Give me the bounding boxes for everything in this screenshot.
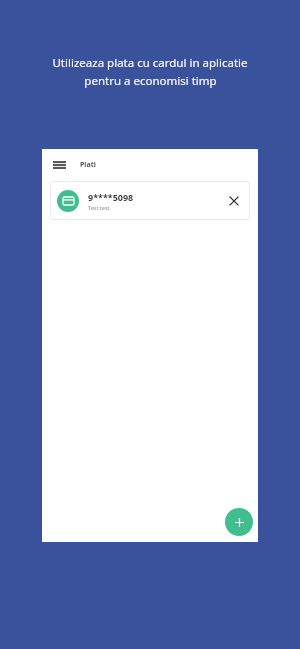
button[interactable]: Open navigation menu <box>51 157 67 173</box>
staticText: Test test <box>88 204 110 211</box>
staticText: Utilizeaza plata cu cardul in aplicatie <box>52 55 248 71</box>
button[interactable]: Add payment method <box>225 508 253 536</box>
button[interactable]: Remove card <box>225 192 243 210</box>
staticText: Plati <box>80 160 96 170</box>
staticText: pentru a economisi timp <box>84 73 217 89</box>
button[interactable]: 9****5098 <box>50 181 250 220</box>
staticText: 9****5098 <box>88 191 134 203</box>
